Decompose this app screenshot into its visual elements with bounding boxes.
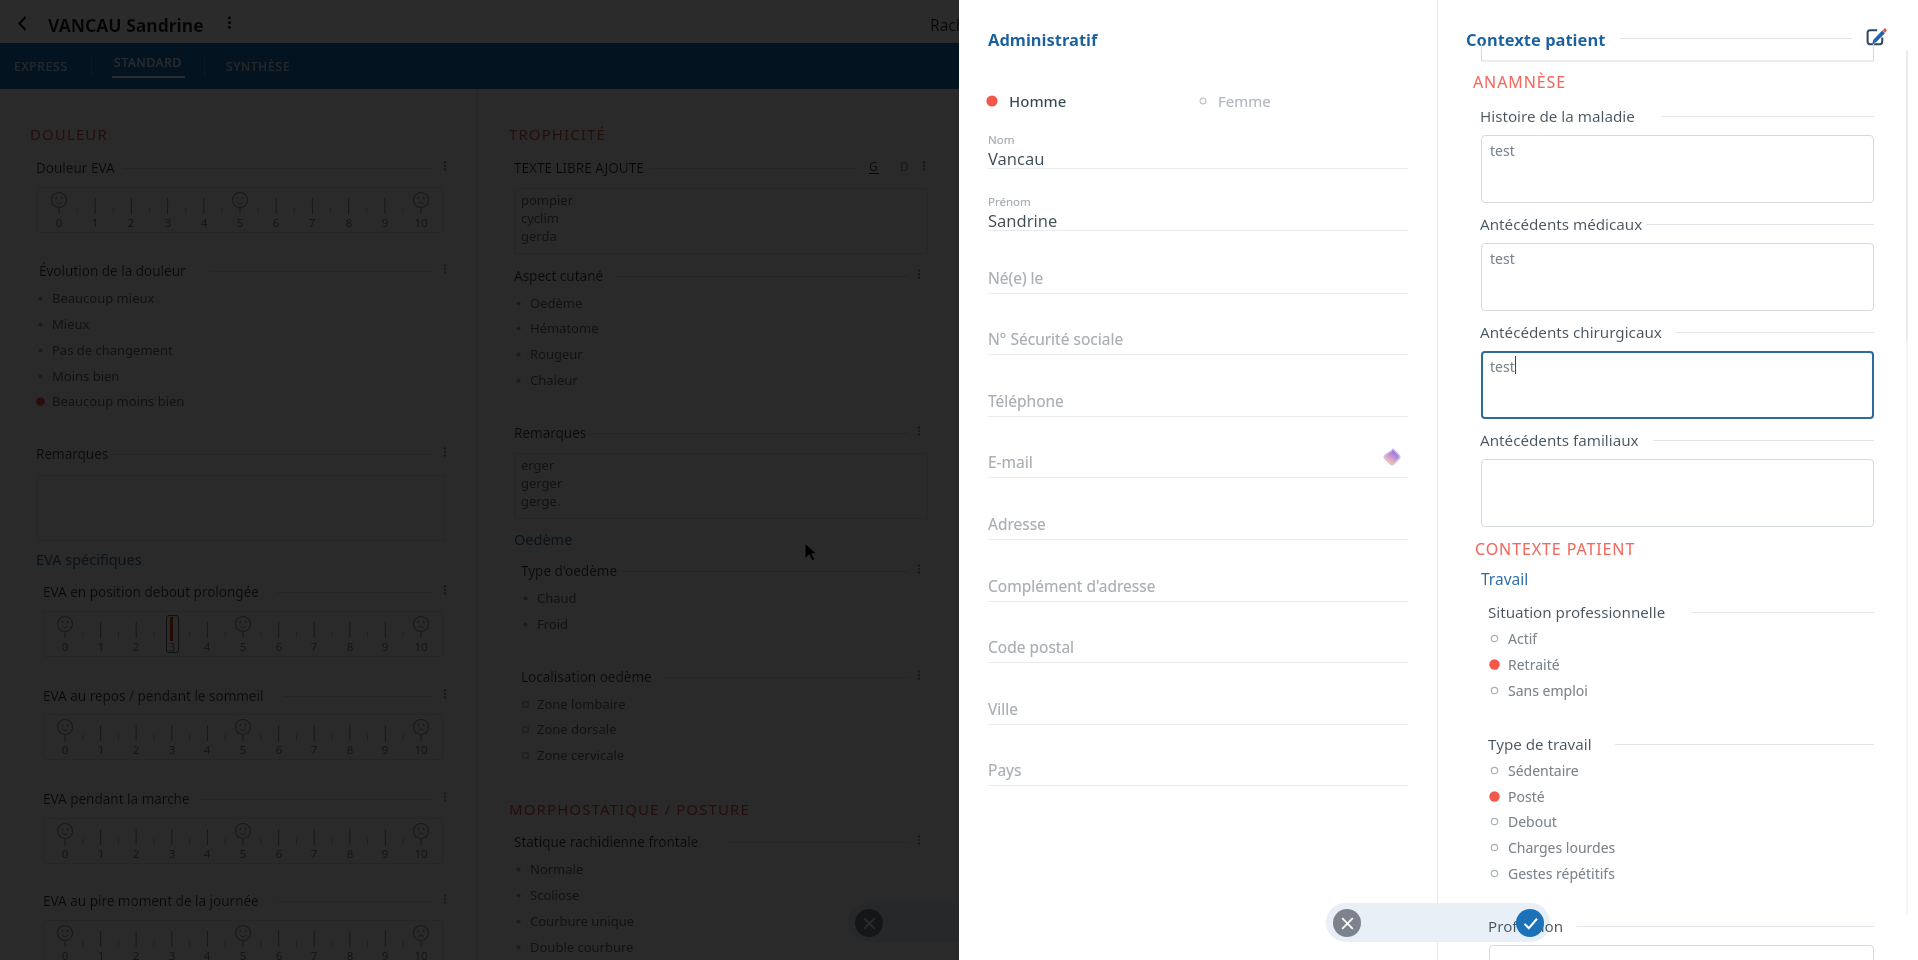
button[interactable] <box>988 737 1408 785</box>
staticText: Retraité <box>1508 655 1560 674</box>
staticText: 9 <box>376 639 394 655</box>
button[interactable]: Hématome <box>514 317 599 339</box>
staticText: N° Sécurité sociale <box>988 328 1124 349</box>
staticText: Mieux <box>52 315 90 333</box>
button[interactable]: EXPRESS <box>0 43 86 89</box>
button[interactable]: AI suggestion <box>1379 444 1405 470</box>
button[interactable] <box>988 120 1408 168</box>
button[interactable]: Back <box>6 7 38 39</box>
button[interactable]: Cancel <box>855 909 883 937</box>
staticText: 1 <box>92 948 110 960</box>
staticText: Administratif <box>988 28 1098 50</box>
button[interactable]: Edit <box>1863 24 1889 50</box>
button[interactable]: Homme <box>986 89 1176 113</box>
staticText: E-mail <box>988 451 1033 472</box>
staticText: MORPHOSTATIQUE / POSTURE <box>509 799 750 819</box>
button[interactable]: Retraité <box>1489 654 1560 674</box>
button[interactable]: 0 <box>43 920 443 960</box>
button[interactable]: Zone lombaire <box>521 693 626 715</box>
button[interactable]: SYNTHÈSE <box>203 43 313 89</box>
button[interactable]: Charges lourdes <box>1489 837 1616 857</box>
staticText: 3 <box>163 846 181 862</box>
button[interactable]: Normale <box>514 858 584 880</box>
button[interactable]: Sédentaire <box>1489 760 1579 780</box>
staticText: Zone cervicale <box>537 746 625 764</box>
button[interactable]: Oedème <box>514 292 583 314</box>
button[interactable]: Mieux <box>36 313 90 335</box>
staticText: 9 <box>376 742 394 758</box>
button[interactable] <box>988 614 1408 662</box>
staticText: 5 <box>234 639 252 655</box>
button[interactable]: Beaucoup mieux <box>36 287 155 309</box>
staticText: test <box>1490 249 1515 268</box>
button[interactable]: Chaleur <box>514 369 578 391</box>
staticText: Sédentaire <box>1508 761 1579 780</box>
button[interactable]: Confirm <box>1516 909 1544 937</box>
staticText: Rougeur <box>530 345 583 363</box>
button[interactable]: test <box>1481 351 1874 419</box>
button[interactable]: Froid <box>521 613 569 635</box>
staticText: 0 <box>56 639 74 655</box>
button[interactable] <box>988 553 1408 601</box>
button[interactable]: Scoliose <box>514 884 580 906</box>
button[interactable] <box>1489 945 1874 960</box>
button[interactable]: STANDARD <box>92 43 204 89</box>
button[interactable]: 0 <box>43 611 443 657</box>
button[interactable] <box>988 429 1408 477</box>
staticText: 6 <box>270 639 288 655</box>
staticText: Zone dorsale <box>537 720 617 738</box>
button[interactable] <box>988 245 1408 293</box>
button[interactable]: Gestes répétitifs <box>1489 863 1615 883</box>
button[interactable] <box>988 182 1408 230</box>
staticText: cyclim <box>521 209 559 227</box>
staticText: 3 <box>163 742 181 758</box>
staticText: EVA pendant la marche <box>43 790 190 808</box>
button[interactable]: Posté <box>1489 786 1545 806</box>
staticText: Situation professionnelle <box>1488 602 1666 623</box>
button[interactable]: Double courbure <box>514 936 634 958</box>
button[interactable]: Sans emploi <box>1489 680 1588 700</box>
staticText: 0 <box>56 742 74 758</box>
button[interactable]: Moins bien <box>36 365 120 387</box>
button[interactable]: Beaucoup moins bien <box>36 390 185 412</box>
staticText: 0 <box>56 846 74 862</box>
button[interactable]: Femme <box>1197 89 1357 113</box>
staticText: 5 <box>234 846 252 862</box>
button[interactable]: Actif <box>1489 628 1538 648</box>
staticText: 7 <box>303 215 321 231</box>
button[interactable]: Chaud <box>521 587 577 609</box>
button[interactable]: Debout <box>1489 811 1557 831</box>
button[interactable]: More options <box>216 9 242 35</box>
button[interactable] <box>988 306 1408 354</box>
staticText: CONTEXTE PATIENT <box>1475 538 1636 560</box>
button[interactable]: test <box>1481 243 1874 311</box>
staticText: Femme <box>1218 91 1271 111</box>
staticText: TEXTE LIBRE AJOUTE <box>514 159 644 177</box>
button[interactable]: Courbure unique <box>514 910 635 932</box>
button[interactable] <box>988 368 1408 416</box>
button[interactable]: Pas de changement <box>36 339 173 361</box>
staticText: 0 <box>50 215 68 231</box>
button[interactable]: Rougeur <box>514 343 583 365</box>
button[interactable] <box>988 491 1408 539</box>
staticText: Né(e) le <box>988 267 1044 288</box>
button[interactable]: Cancel <box>1333 909 1361 937</box>
staticText: 6 <box>270 742 288 758</box>
button[interactable]: Zone cervicale <box>521 744 625 766</box>
staticText: gerger <box>521 474 563 492</box>
staticText: ANAMNÈSE <box>1473 71 1567 93</box>
button[interactable] <box>988 676 1408 724</box>
staticText: Normale <box>530 860 584 878</box>
staticText: Évolution de la douleur <box>39 262 186 280</box>
staticText: Ville <box>988 698 1019 719</box>
button[interactable]: test <box>1481 135 1874 203</box>
button[interactable] <box>1481 459 1874 527</box>
button[interactable]: Zone dorsale <box>521 718 617 740</box>
staticText: Posté <box>1508 787 1545 806</box>
